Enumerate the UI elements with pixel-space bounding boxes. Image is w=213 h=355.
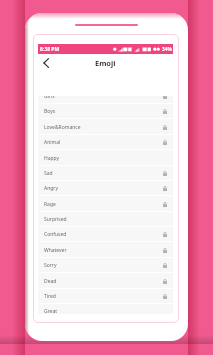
staticText: Sorry bbox=[44, 262, 57, 269]
staticText: Animal bbox=[44, 139, 61, 146]
button[interactable]: Love&Romance bbox=[38, 120, 173, 135]
button[interactable]: Sorry bbox=[38, 258, 173, 273]
staticText: 8:38 PM bbox=[40, 46, 60, 53]
button[interactable]: Great bbox=[38, 304, 173, 314]
staticText: Tired bbox=[44, 293, 56, 300]
staticText: Surprised bbox=[44, 216, 67, 223]
staticText: Girls bbox=[44, 96, 55, 100]
button[interactable]: Dead bbox=[38, 274, 173, 289]
staticText: Great bbox=[44, 308, 58, 314]
button[interactable]: Angry bbox=[38, 181, 173, 196]
staticText: 34% bbox=[162, 46, 172, 53]
staticText: Happy bbox=[44, 155, 60, 162]
button[interactable]: Animal bbox=[38, 135, 173, 150]
button[interactable]: Rage bbox=[38, 197, 173, 212]
staticText: Dead bbox=[44, 278, 57, 285]
button[interactable]: Happy bbox=[38, 151, 173, 166]
staticText: Sad bbox=[44, 170, 53, 177]
button[interactable]: Boys bbox=[38, 104, 173, 119]
button[interactable]: Girls bbox=[38, 96, 173, 104]
staticText: Boys bbox=[44, 108, 56, 115]
button[interactable]: Confused bbox=[38, 227, 173, 242]
button[interactable]: Whatever bbox=[38, 243, 173, 258]
staticText: Whatever bbox=[44, 247, 67, 254]
staticText: Angry bbox=[44, 185, 58, 192]
staticText: Rage bbox=[44, 201, 56, 208]
button[interactable]: Tired bbox=[38, 289, 173, 304]
button[interactable]: Surprised bbox=[38, 212, 173, 227]
staticText: Love&Romance bbox=[44, 124, 81, 131]
button[interactable]: Sad bbox=[38, 166, 173, 181]
staticText: Emoji bbox=[95, 58, 116, 68]
button[interactable]: Back bbox=[38, 55, 54, 71]
staticText: Confused bbox=[44, 231, 67, 238]
